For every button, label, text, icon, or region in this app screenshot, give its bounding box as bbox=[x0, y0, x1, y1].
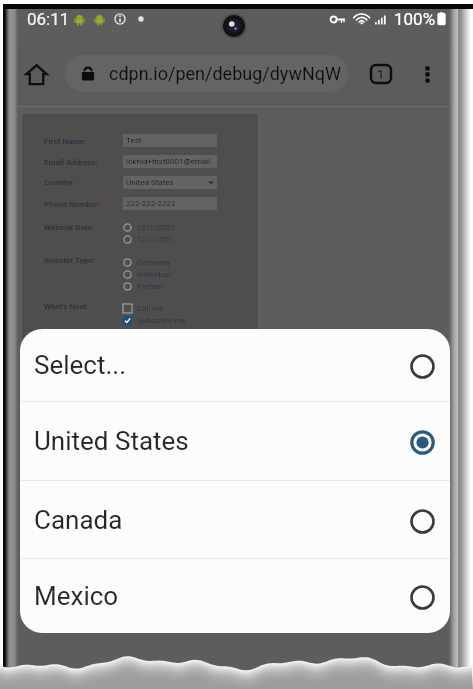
button[interactable]: Home bbox=[19, 52, 54, 96]
staticText: 1 bbox=[377, 67, 385, 82]
staticText: 12/1/2021 bbox=[137, 223, 176, 232]
staticText: Subscribe me bbox=[137, 316, 186, 325]
button[interactable]: Call me bbox=[123, 302, 164, 314]
staticText: cdpn.io/pen/debug/dywNqW bbox=[109, 63, 341, 84]
button[interactable]: cdpn.io/pen/debug/dywNqW bbox=[65, 55, 348, 92]
button[interactable]: Subscribe me bbox=[123, 314, 186, 326]
button[interactable]: Company bbox=[123, 256, 171, 268]
staticText: United States bbox=[34, 426, 189, 456]
staticText: Canada bbox=[34, 505, 123, 535]
staticText: 222-222-2222 bbox=[126, 199, 176, 208]
staticText: Phone Number: bbox=[44, 200, 101, 209]
button[interactable]: 12/2/2021 bbox=[123, 233, 176, 245]
staticText: 100% bbox=[394, 9, 436, 29]
button[interactable]: Canada bbox=[20, 481, 450, 558]
staticText: * bbox=[97, 221, 102, 233]
staticText: * bbox=[100, 156, 105, 168]
staticText: Webinar Date: bbox=[44, 223, 95, 232]
staticText: 12/2/2021 bbox=[137, 235, 176, 244]
staticText: Select... bbox=[34, 350, 127, 380]
staticText: Partner bbox=[137, 282, 164, 291]
staticText: Mexico bbox=[34, 581, 119, 611]
staticText: Email Address: bbox=[44, 158, 98, 167]
staticText: United States bbox=[126, 178, 174, 187]
staticText: Country: bbox=[44, 178, 75, 187]
button[interactable]: More options bbox=[401, 52, 454, 96]
staticText: loknid+test0001@email.inva bbox=[126, 157, 214, 166]
button[interactable]: United States bbox=[123, 176, 217, 189]
button[interactable]: Test bbox=[123, 134, 217, 147]
staticText: Investor Type: bbox=[44, 256, 95, 265]
button[interactable]: Tabs bbox=[361, 52, 401, 96]
button[interactable]: Select... bbox=[20, 329, 450, 401]
staticText: Individual bbox=[137, 270, 172, 279]
staticText: Test bbox=[126, 136, 142, 145]
button[interactable]: loknid+test0001@email.inva bbox=[123, 155, 217, 168]
button[interactable]: 222-222-2222 bbox=[123, 197, 217, 210]
button[interactable]: Individual bbox=[123, 268, 172, 280]
button[interactable]: Mexico bbox=[20, 559, 450, 633]
staticText: * bbox=[103, 198, 108, 210]
button[interactable]: United States bbox=[20, 402, 450, 480]
staticText: What's Next: bbox=[44, 302, 89, 311]
staticText: 06:11 bbox=[27, 9, 70, 29]
staticText: Company bbox=[137, 258, 171, 267]
button[interactable]: Partner bbox=[123, 280, 164, 292]
staticText: Call me bbox=[137, 304, 164, 313]
staticText: First Name: bbox=[44, 137, 86, 146]
button[interactable]: 12/1/2021 bbox=[123, 221, 176, 233]
staticText: * bbox=[88, 135, 93, 147]
